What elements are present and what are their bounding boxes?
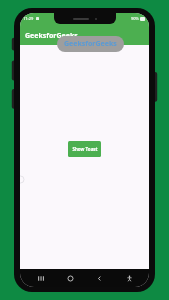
staticText: GeeksforGeeks [25, 31, 78, 41]
staticText: 90% [131, 16, 139, 21]
button[interactable]: Home [61, 269, 79, 287]
staticText: Show Toast [72, 146, 98, 152]
button[interactable]: Recent apps [31, 269, 49, 287]
button[interactable]: Back [90, 269, 108, 287]
staticText: 11:29 [23, 16, 34, 21]
button[interactable]: Accessibility [120, 269, 138, 287]
button[interactable]: Show Toast [68, 141, 101, 157]
staticText: GeeksforGeeks [64, 39, 117, 49]
